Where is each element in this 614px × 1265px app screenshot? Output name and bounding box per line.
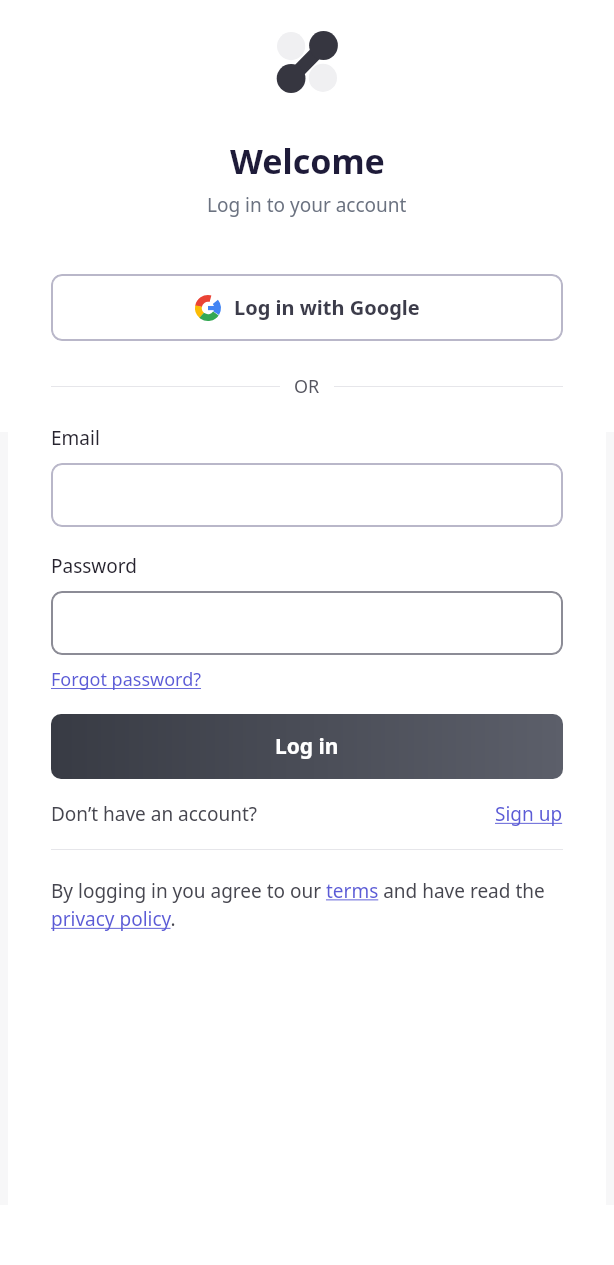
staticText: Log in: [275, 732, 339, 761]
staticText: Password: [51, 553, 137, 579]
staticText: Forgot password?: [51, 667, 202, 692]
staticText: Log in with Google: [234, 294, 420, 321]
button[interactable]: [51, 463, 563, 527]
button[interactable]: Log in: [51, 714, 563, 779]
button[interactable]: Forgot password?: [51, 667, 202, 692]
staticText: Don’t have an account?: [51, 801, 258, 827]
staticText: Email: [51, 425, 100, 451]
button[interactable]: Sign up: [495, 801, 563, 827]
staticText: Log in to your account: [207, 192, 407, 218]
other: App logo: [277, 32, 337, 92]
staticText: Sign up: [495, 801, 563, 827]
staticText: By logging in you agree to our terms and…: [51, 878, 563, 932]
button[interactable]: [51, 591, 563, 655]
button[interactable]: Log in with Google: [51, 274, 563, 341]
staticText: OR: [294, 374, 320, 399]
staticText: Welcome: [230, 138, 385, 184]
